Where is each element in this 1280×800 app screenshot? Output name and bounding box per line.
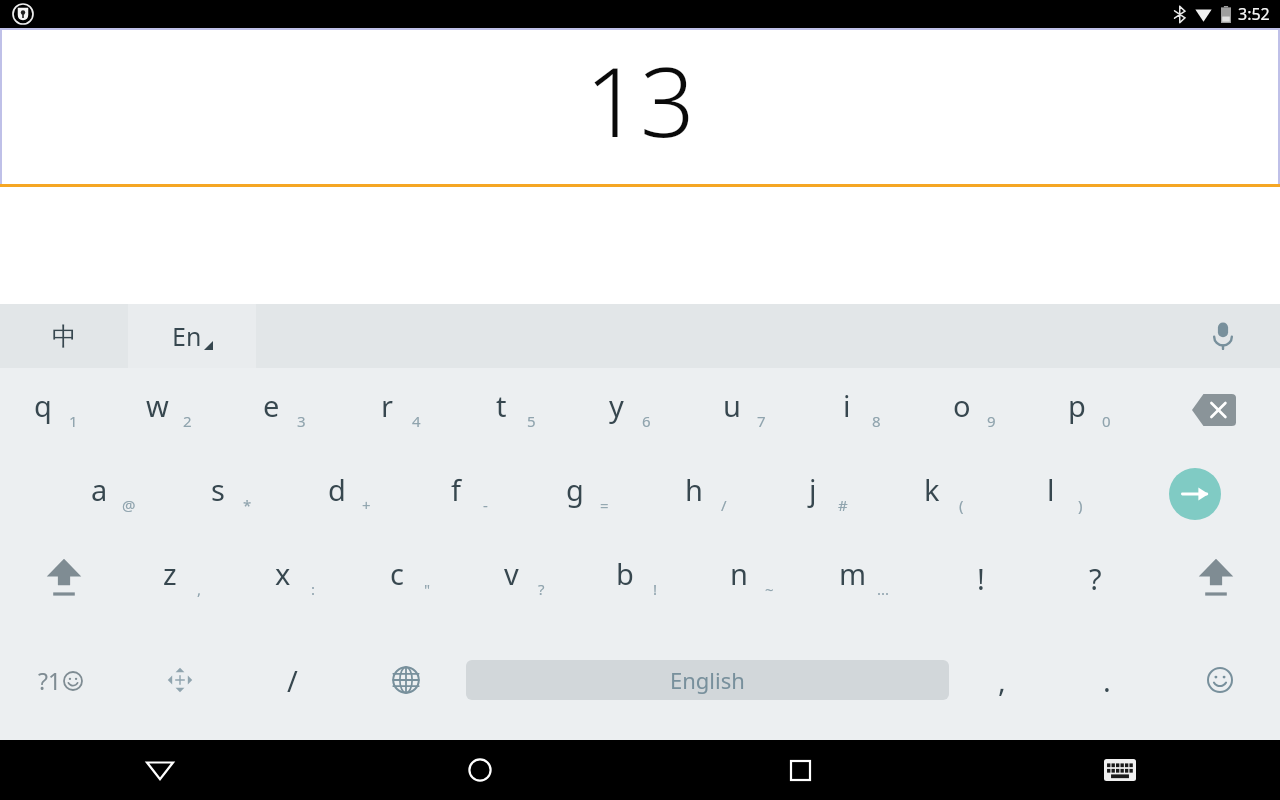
staticText: f <box>451 470 461 509</box>
staticText: t <box>496 386 507 425</box>
button[interactable]: Change language <box>345 620 466 740</box>
staticText: k <box>924 470 940 509</box>
button[interactable]: k <box>886 452 1005 536</box>
button[interactable]: g <box>529 452 648 536</box>
staticText: ? <box>1089 559 1102 598</box>
button[interactable]: t <box>458 368 573 452</box>
button[interactable]: ! <box>924 536 1038 620</box>
staticText: ... <box>877 579 890 599</box>
button[interactable]: z <box>127 536 240 620</box>
button[interactable]: Recent apps <box>640 740 960 800</box>
staticText: g <box>566 470 584 509</box>
button[interactable]: p <box>1033 368 1148 452</box>
staticText: - <box>483 495 488 515</box>
button[interactable]: ?1 <box>0 620 120 740</box>
staticText: p <box>1068 386 1086 425</box>
staticText: e <box>263 386 280 425</box>
button[interactable]: 13 <box>2 30 1278 184</box>
button[interactable]: a <box>54 452 172 536</box>
staticText: 9 <box>987 411 996 431</box>
staticText: h <box>685 470 703 509</box>
button[interactable]: c <box>354 536 468 620</box>
button[interactable]: j <box>767 452 886 536</box>
button[interactable]: y <box>573 368 688 452</box>
staticText: n <box>730 554 748 593</box>
staticText: 2 <box>183 411 192 431</box>
staticText: 6 <box>642 411 651 431</box>
staticText: q <box>34 386 52 425</box>
button[interactable]: . <box>1054 620 1159 740</box>
button[interactable]: q <box>0 368 114 452</box>
staticText: @ <box>122 495 136 515</box>
button[interactable]: n <box>696 536 810 620</box>
button[interactable]: h <box>648 452 767 536</box>
staticText: m <box>839 554 867 593</box>
button[interactable]: f <box>410 452 529 536</box>
button[interactable]: Enter <box>1124 452 1266 536</box>
staticText: x <box>275 554 291 593</box>
other: VPN active <box>12 3 34 25</box>
button[interactable]: d <box>291 452 410 536</box>
staticText: English <box>670 665 745 695</box>
button[interactable]: Voice input <box>1206 319 1240 353</box>
button[interactable]: En <box>128 304 256 368</box>
staticText: ) <box>1078 495 1083 515</box>
button[interactable]: Cursor control <box>120 620 240 740</box>
button[interactable]: Backspace <box>1148 368 1280 452</box>
staticText: o <box>953 386 971 425</box>
staticText: " <box>424 579 431 599</box>
staticText: l <box>1047 470 1055 509</box>
staticText: 3:52 <box>1238 3 1270 25</box>
button[interactable]: Hide keyboard <box>0 740 320 800</box>
staticText: / <box>721 495 727 515</box>
button[interactable]: / <box>240 620 345 740</box>
staticText: a <box>91 470 108 509</box>
staticText: , <box>998 661 1006 700</box>
button[interactable]: s <box>172 452 291 536</box>
staticText: ? <box>538 579 545 599</box>
staticText: 7 <box>757 411 766 431</box>
staticText: y <box>609 386 624 425</box>
staticText: z <box>163 554 177 593</box>
staticText: i <box>843 386 851 425</box>
button[interactable]: u <box>688 368 803 452</box>
staticText: 中 <box>52 321 77 352</box>
button[interactable]: v <box>468 536 582 620</box>
button[interactable]: e <box>228 368 343 452</box>
staticText: j <box>809 470 817 509</box>
staticText: ! <box>977 559 985 598</box>
staticText: d <box>328 470 346 509</box>
button[interactable]: i <box>803 368 918 452</box>
staticText: 3 <box>297 411 306 431</box>
button[interactable]: Shift <box>0 536 127 620</box>
button[interactable]: , <box>949 620 1054 740</box>
button[interactable]: r <box>343 368 458 452</box>
staticText: v <box>504 554 519 593</box>
button[interactable]: b <box>582 536 696 620</box>
button[interactable]: English <box>466 660 949 700</box>
staticText: c <box>390 554 404 593</box>
staticText: u <box>723 386 741 425</box>
staticText: s <box>211 470 225 509</box>
staticText: 4 <box>412 411 421 431</box>
button[interactable]: o <box>918 368 1033 452</box>
button[interactable]: l <box>1005 452 1124 536</box>
button[interactable]: Home <box>320 740 640 800</box>
button[interactable]: Shift <box>1152 536 1280 620</box>
button[interactable]: Emoji <box>1159 620 1280 740</box>
staticText: ~ <box>765 579 774 599</box>
button[interactable]: x <box>240 536 354 620</box>
staticText: 5 <box>527 411 536 431</box>
staticText: . <box>1103 661 1111 700</box>
staticText: r <box>381 386 393 425</box>
button[interactable]: ? <box>1038 536 1152 620</box>
button[interactable]: m <box>810 536 924 620</box>
staticText: b <box>616 554 634 593</box>
staticText: / <box>287 661 298 700</box>
staticText: + <box>362 495 371 515</box>
button[interactable]: 中 <box>0 304 128 368</box>
staticText: 0 <box>1102 411 1111 431</box>
button[interactable]: w <box>114 368 228 452</box>
button[interactable]: Switch keyboard <box>960 740 1280 800</box>
staticText: En <box>172 319 202 353</box>
